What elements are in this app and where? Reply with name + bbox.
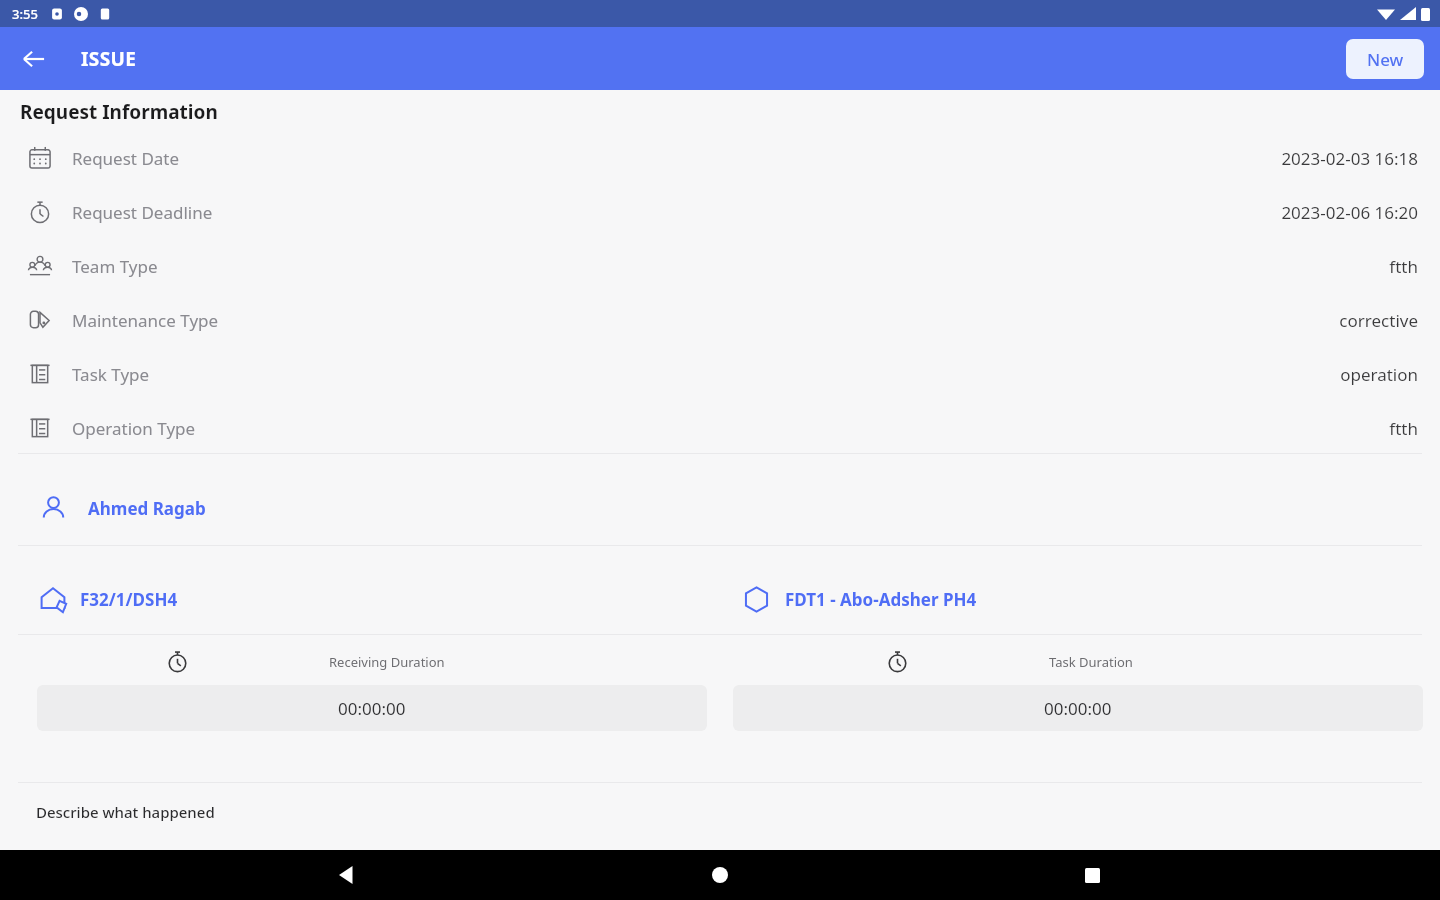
staticText: Request Date [72,147,180,170]
button[interactable]: Home [696,851,744,899]
button[interactable]: Back [10,35,58,83]
staticText: 00:00:00 [1044,697,1112,720]
staticText: F32/1/DSH4 [80,588,178,611]
button[interactable]: 00:00:00 [37,685,707,731]
button[interactable]: 00:00:00 [733,685,1423,731]
staticText: 2023-02-06 16:20 [1281,201,1418,224]
staticText: Ahmed Ragab [88,497,206,520]
staticText: New [1367,48,1404,71]
button[interactable]: New [1346,39,1424,79]
button[interactable]: FDT1 - Abo-Adsher PH4 [720,562,1440,636]
staticText: 3:55 [12,5,38,23]
staticText: Describe what happened [36,802,215,822]
button[interactable]: Ahmed Ragab [0,472,1440,544]
staticText: corrective [1339,309,1418,332]
staticText: ftth [1389,255,1418,278]
staticText: 00:00:00 [338,697,406,720]
staticText: Request Information [20,99,218,125]
staticText: 2023-02-03 16:18 [1281,147,1418,170]
staticText: Request Deadline [72,201,213,224]
staticText: Operation Type [72,417,196,440]
staticText: ISSUE [81,46,137,72]
staticText: ftth [1389,417,1418,440]
button[interactable]: Operation Type [0,401,1440,455]
staticText: Team Type [72,255,158,278]
staticText: FDT1 - Abo-Adsher PH4 [785,588,977,611]
button[interactable]: Request Date [0,131,1440,185]
button[interactable]: Recent apps [1068,851,1116,899]
button[interactable]: Task Type [0,347,1440,401]
staticText: operation [1340,363,1418,386]
button[interactable]: Back [324,851,372,899]
staticText: Maintenance Type [72,309,219,332]
button[interactable]: Team Type [0,239,1440,293]
button[interactable]: Maintenance Type [0,293,1440,347]
button[interactable]: F32/1/DSH4 [0,562,720,636]
button[interactable]: Request Deadline [0,185,1440,239]
staticText: Task Type [72,363,150,386]
staticText: Receiving Duration [329,653,445,671]
staticText: Task Duration [1049,653,1133,671]
